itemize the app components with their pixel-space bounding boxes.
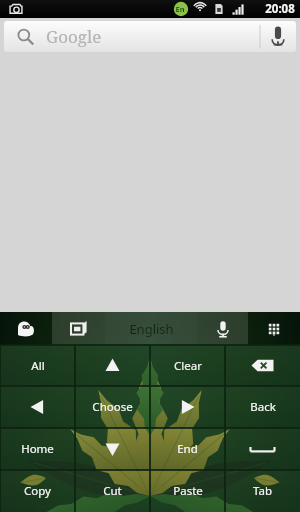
staticText: Tab — [253, 483, 272, 499]
button[interactable]: Cut — [75, 470, 150, 512]
button[interactable]: End — [150, 428, 225, 470]
button[interactable]: Back — [225, 386, 300, 428]
staticText: Google — [46, 25, 102, 48]
button[interactable]: Switch layout — [52, 312, 105, 345]
button[interactable]: Google — [4, 21, 296, 52]
button[interactable]: Left — [0, 386, 75, 428]
staticText: Copy — [24, 483, 51, 499]
staticText: Cut — [103, 483, 122, 499]
staticText: All — [31, 358, 45, 374]
staticText: Paste — [173, 483, 203, 499]
button[interactable]: English — [105, 312, 197, 345]
button[interactable]: Keypad — [248, 312, 300, 345]
button[interactable]: Voice search — [260, 21, 296, 52]
staticText: En — [175, 4, 185, 14]
staticText: Back — [250, 399, 276, 415]
button[interactable]: Choose — [75, 386, 150, 428]
button[interactable]: Emoji — [0, 312, 52, 345]
button[interactable]: Paste — [150, 470, 225, 512]
button[interactable]: Up — [75, 345, 150, 386]
button[interactable]: Down — [75, 428, 150, 470]
button[interactable]: Backspace — [225, 345, 300, 386]
button[interactable]: Space — [225, 428, 300, 470]
staticText: English — [129, 320, 174, 338]
staticText: Clear — [174, 358, 202, 374]
button[interactable]: All — [0, 345, 75, 386]
staticText: Choose — [92, 399, 133, 415]
staticText: Home — [21, 441, 54, 457]
button[interactable]: Copy — [0, 470, 75, 512]
button[interactable]: Clear — [150, 345, 225, 386]
button[interactable]: Home — [0, 428, 75, 470]
staticText: End — [177, 441, 198, 457]
button[interactable]: Voice input — [197, 312, 248, 345]
button[interactable]: Tab — [225, 470, 300, 512]
button[interactable]: Right — [150, 386, 225, 428]
staticText: 20:08 — [265, 1, 295, 17]
